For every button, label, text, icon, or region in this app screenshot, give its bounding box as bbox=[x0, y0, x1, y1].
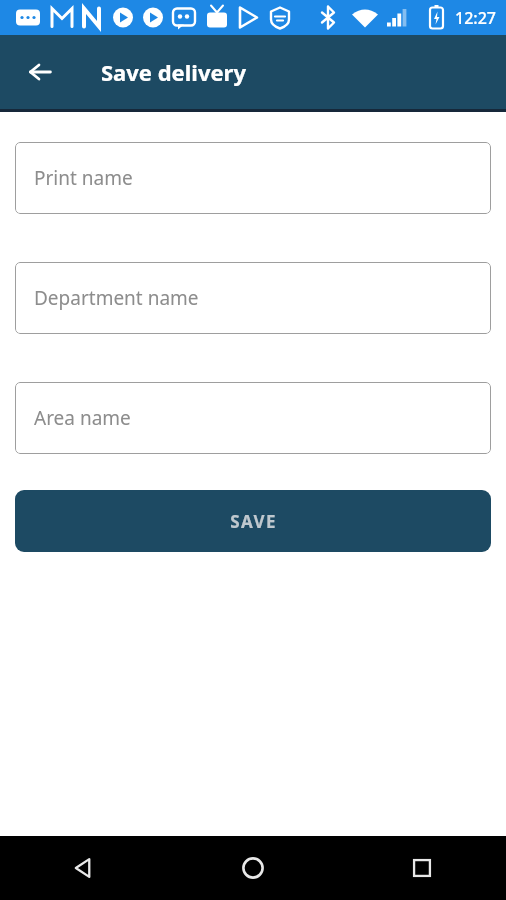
button[interactable]: Print name bbox=[15, 142, 491, 214]
staticText: Area name bbox=[34, 405, 131, 431]
button[interactable]: Back bbox=[0, 836, 168, 900]
button[interactable]: Back bbox=[18, 50, 62, 94]
staticText: Department name bbox=[34, 285, 199, 311]
button[interactable]: Home bbox=[168, 836, 337, 900]
button[interactable]: Recents bbox=[337, 836, 506, 900]
staticText: 12:27 bbox=[455, 7, 496, 29]
button[interactable]: SAVE bbox=[15, 490, 491, 552]
staticText: Print name bbox=[34, 165, 133, 191]
staticText: Save delivery bbox=[101, 57, 246, 87]
button[interactable]: Department name bbox=[15, 262, 491, 334]
staticText: SAVE bbox=[230, 510, 277, 533]
button[interactable]: Area name bbox=[15, 382, 491, 454]
